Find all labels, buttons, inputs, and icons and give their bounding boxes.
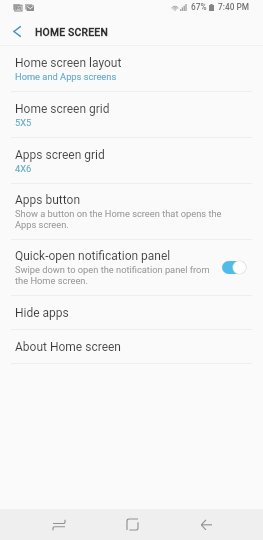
button[interactable]: Home screen layout — [0, 46, 263, 91]
staticText: Home screen layout — [15, 56, 122, 70]
button[interactable]: Recent apps — [37, 509, 81, 540]
staticText: About Home screen — [15, 340, 121, 354]
staticText: 7:40 PM — [218, 2, 249, 12]
staticText: 67% — [191, 2, 207, 12]
staticText: Home screen grid — [15, 102, 110, 116]
button[interactable]: Apps button — [0, 184, 263, 239]
button[interactable]: About Home screen — [0, 330, 263, 363]
button[interactable]: Back — [184, 509, 228, 540]
staticText: Hide apps — [15, 306, 69, 320]
button[interactable]: Navigate up — [0, 18, 34, 45]
button[interactable]: Quick-open notification panel toggle — [222, 260, 247, 275]
staticText: 4X6 — [15, 163, 32, 174]
button[interactable]: Apps screen grid — [0, 138, 263, 183]
staticText: HOME SCREEN — [35, 26, 109, 38]
button[interactable]: Quick-open notification panel — [0, 240, 263, 295]
staticText: Swipe down to open the notification pane… — [15, 264, 210, 286]
staticText: Home and Apps screens — [15, 71, 117, 82]
button[interactable]: Home — [110, 509, 154, 540]
staticText: Show a button on the Home screen that op… — [15, 208, 222, 230]
button[interactable]: Home screen grid — [0, 92, 263, 137]
staticText: Apps button — [15, 193, 81, 207]
staticText: Apps screen grid — [15, 148, 105, 162]
staticText: Quick-open notification panel — [15, 249, 171, 263]
button[interactable]: Hide apps — [0, 296, 263, 329]
staticText: 5X5 — [15, 117, 32, 128]
